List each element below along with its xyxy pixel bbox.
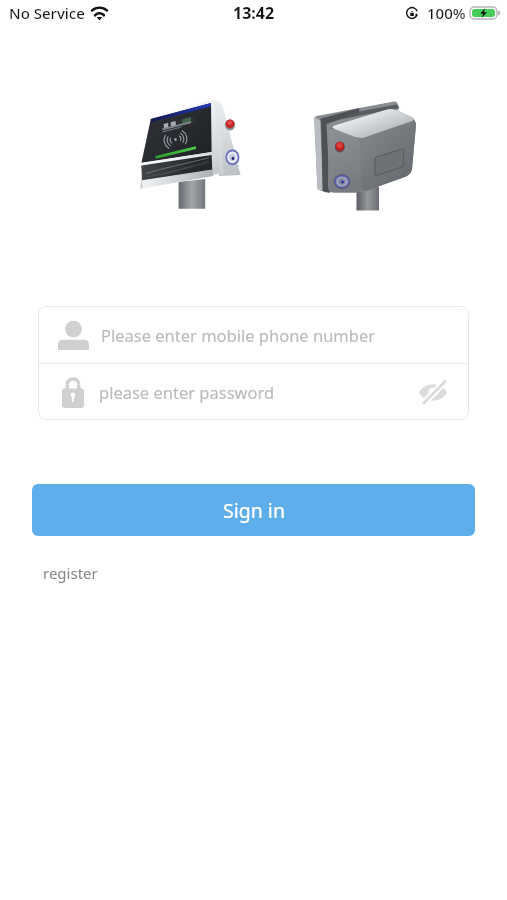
staticText: Sign in bbox=[223, 497, 285, 524]
button[interactable]: Sign in bbox=[32, 484, 475, 536]
button[interactable]: Please enter mobile phone number bbox=[38, 306, 469, 363]
staticText: 13:42 bbox=[233, 2, 275, 24]
staticText: Please enter mobile phone number bbox=[101, 324, 376, 346]
button[interactable]: register bbox=[38, 563, 98, 583]
staticText: 100% bbox=[427, 3, 466, 23]
staticText: No Service bbox=[9, 3, 85, 23]
staticText: register bbox=[43, 563, 98, 583]
staticText: please enter password bbox=[99, 381, 275, 403]
button[interactable]: Show password bbox=[411, 370, 455, 414]
button[interactable]: please enter password bbox=[38, 364, 469, 420]
